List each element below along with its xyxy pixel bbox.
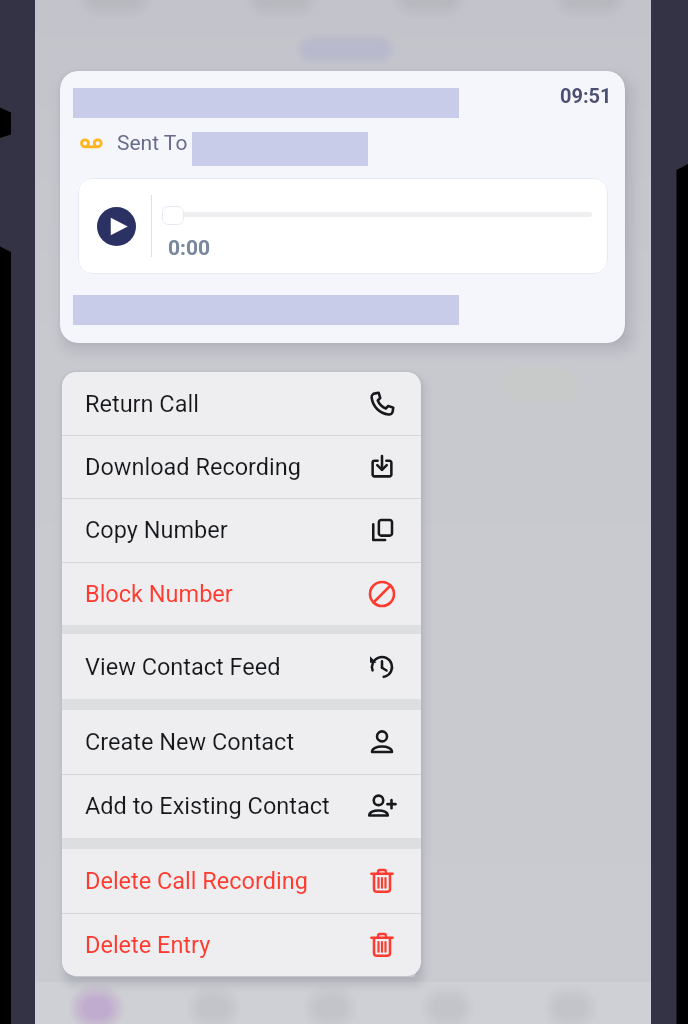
staticText: Delete Entry	[85, 931, 211, 959]
button[interactable]: Play	[97, 207, 136, 246]
staticText: Copy Number	[85, 516, 228, 544]
staticText: Create New Contact	[85, 728, 295, 756]
button[interactable]: Delete Entry	[62, 913, 421, 976]
button[interactable]: Seek	[162, 206, 184, 225]
button[interactable]: Block Number	[62, 562, 421, 625]
button[interactable]: View Contact Feed	[62, 634, 421, 699]
staticText: Delete Call Recording	[85, 867, 308, 895]
staticText: Download Recording	[85, 453, 301, 481]
button[interactable]: Delete Call Recording	[62, 849, 421, 913]
button[interactable]: Copy Number	[62, 498, 421, 562]
staticText: Return Call	[85, 390, 199, 418]
button[interactable]: Download Recording	[62, 435, 421, 498]
staticText: 0:00	[168, 236, 211, 261]
button[interactable]: Add to Existing Contact	[62, 774, 421, 838]
button[interactable]: Return Call	[62, 372, 421, 435]
staticText: 09:51	[560, 84, 612, 107]
staticText: Add to Existing Contact	[85, 792, 330, 820]
button[interactable]: Create New Contact	[62, 710, 421, 774]
staticText: Sent To	[117, 131, 188, 156]
staticText: Block Number	[85, 580, 233, 608]
staticText: View Contact Feed	[85, 653, 281, 681]
